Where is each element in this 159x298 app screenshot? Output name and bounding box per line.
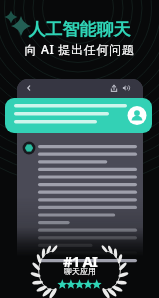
staticText: 向 AI 提出任何问题 [0,41,159,57]
staticText: 人工智能聊天 [0,19,159,40]
staticText: 聊天应用 [64,266,96,276]
button[interactable]: Share [108,82,120,94]
button[interactable]: Back [23,82,35,94]
staticText: #1 AI [63,251,97,271]
button[interactable]: Sound [120,82,132,94]
